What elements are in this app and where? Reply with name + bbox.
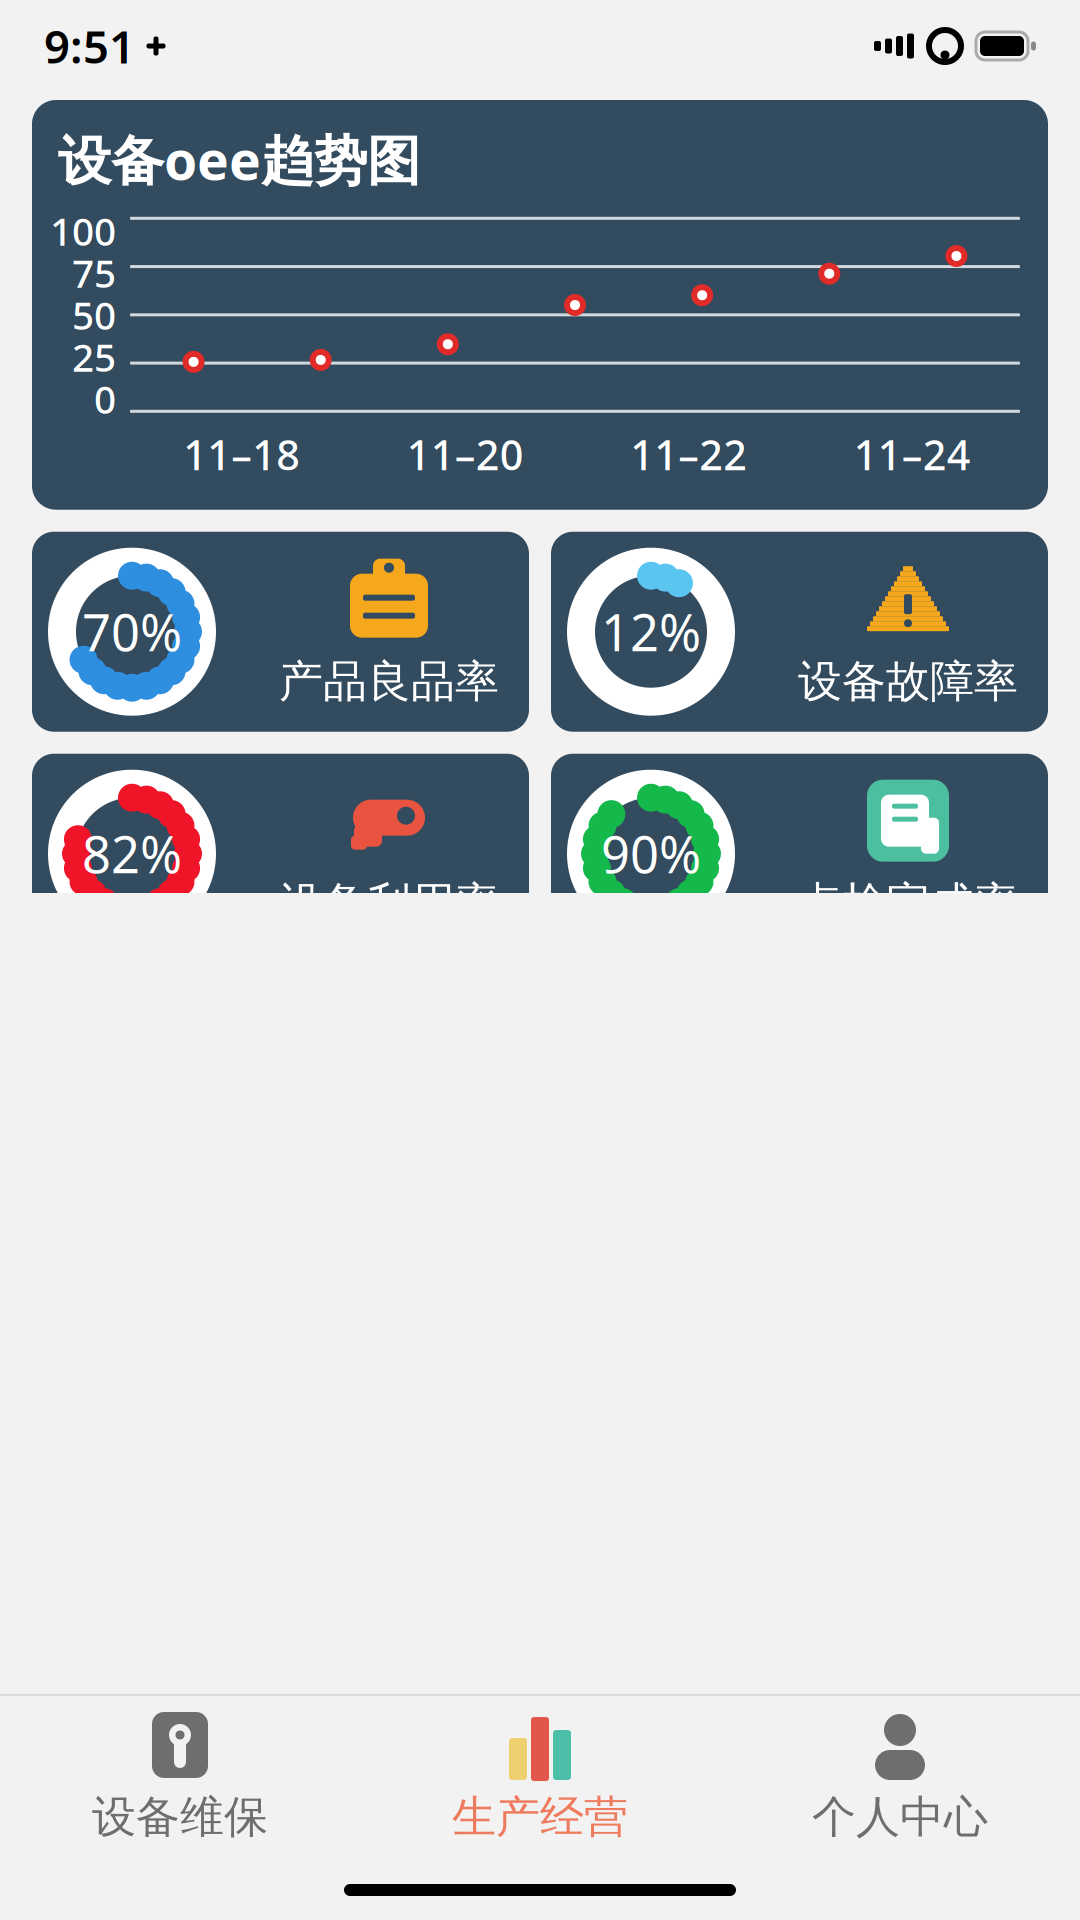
- staticText: 11–22: [630, 427, 747, 482]
- staticText: Tue: [307, 1650, 381, 1708]
- staticText: 设备利用率: [279, 877, 499, 931]
- staticText: Thu: [548, 1650, 626, 1708]
- button[interactable]: 个人中心: [720, 1696, 1080, 1856]
- staticText: 11–20: [407, 427, 524, 482]
- staticText: 12%: [601, 598, 701, 665]
- staticText: 70%: [82, 598, 182, 665]
- button[interactable]: 90%: [551, 754, 1048, 954]
- button[interactable]: 生产经营: [360, 1696, 720, 1856]
- staticText: 设备维保: [92, 1790, 268, 1844]
- staticText: Mon: [176, 1650, 270, 1708]
- staticText: Wed: [420, 1650, 512, 1708]
- staticText: 个人中心: [812, 1790, 988, 1844]
- staticText: 82%: [82, 820, 182, 887]
- staticText: 75: [72, 247, 116, 298]
- staticText: Fri: [682, 1650, 734, 1708]
- staticText: 点检完成率: [798, 877, 1018, 931]
- button[interactable]: 82%: [32, 754, 529, 954]
- staticText: 设备故障率: [798, 655, 1018, 709]
- staticText: 生产经营: [452, 1790, 628, 1844]
- button[interactable]: 70%: [32, 532, 529, 732]
- staticText: 11–24: [854, 427, 971, 482]
- staticText: 9:51: [44, 16, 135, 76]
- button[interactable]: 设备维保: [0, 1696, 360, 1856]
- staticText: 90%: [601, 820, 701, 887]
- staticText: 产品良品率: [279, 655, 499, 709]
- staticText: 设备oee趋势图: [58, 124, 420, 195]
- staticText: 100: [50, 205, 116, 256]
- button[interactable]: 12%: [551, 532, 1048, 732]
- staticText: 11–18: [183, 427, 300, 482]
- staticText: 25: [72, 331, 116, 382]
- staticText: 0: [94, 373, 116, 424]
- staticText: Sun: [912, 1650, 990, 1708]
- staticText: 50: [72, 289, 116, 340]
- staticText: Sat: [797, 1650, 862, 1708]
